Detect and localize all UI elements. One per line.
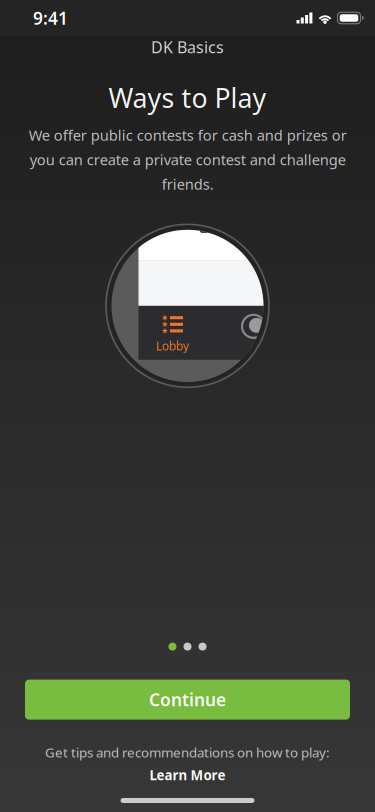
staticText: Lobby — [156, 338, 189, 354]
staticText: L — [250, 342, 257, 359]
button[interactable]: DK Basics — [0, 36, 375, 58]
staticText: Continue — [149, 688, 226, 711]
staticText: 9:41 — [33, 6, 68, 29]
staticText: Learn More — [149, 766, 225, 784]
button[interactable]: Continue — [25, 680, 350, 720]
button[interactable]: Learn More — [149, 766, 225, 784]
staticText: We offer public contests for cash and pr… — [28, 125, 346, 194]
staticText: Ways to Play — [108, 80, 266, 115]
staticText: DK Basics — [151, 36, 224, 58]
staticText: Get tips and recommendations on how to p… — [45, 744, 330, 761]
